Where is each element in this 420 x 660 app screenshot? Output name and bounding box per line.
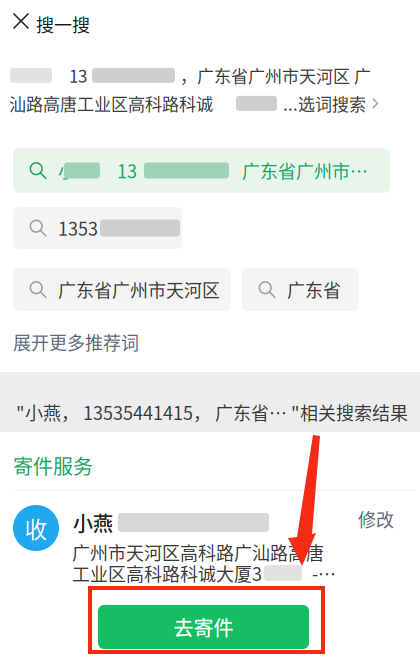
button[interactable]: 修改 — [358, 509, 398, 529]
staticText: 广东省广州市… — [242, 157, 368, 184]
staticText: -… — [312, 560, 336, 586]
staticText: 广州市天河区高科路广汕路高唐 — [72, 539, 324, 565]
staticText: 小燕 — [73, 508, 113, 537]
staticText: 去寄件 — [173, 612, 233, 641]
staticText: ，广东省广州市天河区 广 — [180, 63, 371, 88]
staticText: 展开更多推荐词 — [13, 329, 139, 355]
staticText: 13 — [69, 63, 87, 88]
staticText: 广东省 — [287, 276, 341, 303]
staticText: "小燕， 13535441415， 广东省… "相关搜索结果 — [16, 399, 408, 425]
staticText: 13 — [117, 157, 137, 184]
button[interactable]: 小 — [13, 148, 390, 193]
button[interactable]: 1353 — [13, 207, 182, 249]
staticText: 工业区高科路科诚大厦3 — [72, 560, 262, 586]
staticText: 寄件服务 — [13, 451, 93, 480]
staticText: ...选词搜索 — [283, 91, 366, 116]
staticText: 小 — [58, 157, 76, 184]
button[interactable]: 展开更多推荐词 — [13, 331, 143, 353]
staticText: 搜一搜 — [36, 11, 90, 37]
staticText: 1353 — [58, 215, 98, 241]
staticText: 收 — [24, 512, 47, 544]
staticText: 修改 — [358, 506, 394, 532]
staticText: 汕路高唐工业区高科路科诚 — [9, 91, 213, 116]
button[interactable]: 广东省广州市天河区 — [13, 268, 231, 311]
button[interactable]: 广东省 — [242, 268, 359, 311]
button[interactable]: Close — [5, 5, 37, 37]
button[interactable]: 去寄件 — [98, 605, 309, 649]
staticText: 广东省广州市天河区 — [58, 276, 220, 303]
